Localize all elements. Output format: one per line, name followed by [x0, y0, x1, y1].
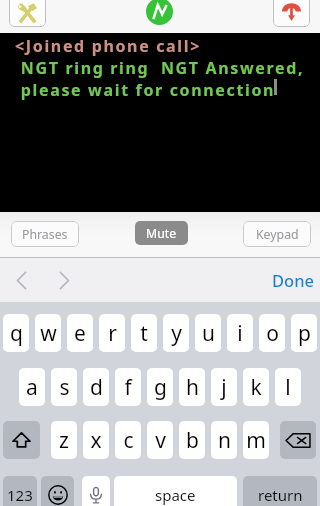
staticText: o — [266, 319, 279, 348]
button[interactable]: t — [131, 314, 157, 352]
button[interactable]: Connection status — [146, 0, 173, 25]
button[interactable]: Emoji — [41, 476, 74, 506]
staticText: Phrases — [22, 226, 68, 243]
staticText: e — [74, 319, 86, 348]
button[interactable]: b — [179, 421, 205, 459]
staticText: 123 — [7, 485, 33, 505]
staticText: n — [218, 426, 231, 455]
staticText: t — [140, 319, 148, 348]
staticText: please wait for connection — [15, 79, 276, 101]
button[interactable]: space — [114, 476, 237, 506]
button[interactable]: 123 — [3, 476, 37, 506]
button[interactable]: Backspace — [280, 421, 316, 459]
button[interactable]: h — [179, 368, 205, 406]
button[interactable]: Done — [269, 263, 317, 297]
staticText: l — [285, 373, 291, 402]
staticText: NGT ring ring NGT Answered, — [15, 57, 305, 79]
button[interactable]: o — [259, 314, 285, 352]
button[interactable]: Shift — [3, 421, 40, 459]
staticText: s — [59, 373, 70, 402]
button[interactable]: s — [51, 368, 77, 406]
staticText: z — [59, 426, 69, 455]
staticText: k — [250, 373, 262, 402]
button[interactable]: z — [51, 421, 77, 459]
staticText: f — [124, 373, 132, 402]
button[interactable]: p — [291, 314, 317, 352]
staticText: c — [123, 426, 134, 455]
button[interactable]: Phrases — [11, 221, 79, 247]
button[interactable]: return — [243, 476, 317, 506]
button[interactable]: q — [3, 314, 29, 352]
staticText: r — [108, 319, 117, 348]
button[interactable]: f — [115, 368, 141, 406]
button[interactable]: v — [147, 421, 173, 459]
staticText: h — [186, 373, 199, 402]
button[interactable]: k — [243, 368, 269, 406]
staticText: <Joined phone call> — [15, 35, 201, 57]
button[interactable]: a — [19, 368, 45, 406]
button[interactable]: e — [67, 314, 93, 352]
button[interactable]: w — [35, 314, 61, 352]
staticText: a — [26, 373, 38, 402]
staticText: Keypad — [256, 226, 299, 243]
staticText: x — [90, 426, 102, 455]
button[interactable]: i — [227, 314, 253, 352]
button[interactable]: Dictate — [82, 476, 110, 506]
button[interactable]: r — [99, 314, 125, 352]
button[interactable]: l — [275, 368, 301, 406]
staticText: return — [258, 485, 303, 505]
staticText: q — [10, 319, 23, 348]
staticText: w — [40, 319, 57, 348]
button[interactable]: Previous — [7, 263, 35, 297]
staticText: g — [154, 373, 167, 402]
staticText: p — [298, 319, 311, 348]
button[interactable]: g — [147, 368, 173, 406]
staticText: m — [246, 426, 266, 455]
staticText: b — [186, 426, 199, 455]
staticText: u — [202, 319, 215, 348]
staticText: j — [221, 373, 227, 402]
staticText: Mute — [146, 225, 177, 242]
button[interactable]: d — [83, 368, 109, 406]
button[interactable]: j — [211, 368, 237, 406]
button[interactable]: n — [211, 421, 237, 459]
button[interactable]: u — [195, 314, 221, 352]
staticText: d — [90, 373, 103, 402]
staticText: i — [237, 319, 243, 348]
button[interactable]: m — [243, 421, 269, 459]
button[interactable]: Mute — [135, 221, 188, 245]
button[interactable]: Next — [50, 263, 78, 297]
staticText: y — [171, 319, 182, 348]
staticText: space — [155, 485, 196, 505]
button[interactable]: Tools — [9, 0, 46, 27]
button[interactable]: x — [83, 421, 109, 459]
staticText: Done — [272, 269, 314, 291]
button[interactable]: y — [163, 314, 189, 352]
button[interactable]: c — [115, 421, 141, 459]
button[interactable]: End call — [273, 0, 310, 27]
staticText: v — [155, 426, 166, 455]
button[interactable]: Keypad — [243, 221, 311, 247]
